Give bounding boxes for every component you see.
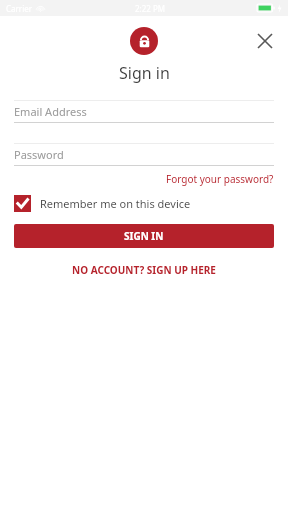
staticText: Carrier (6, 3, 33, 14)
button[interactable]: Email Address (14, 100, 274, 123)
staticText: Remember me on this device (40, 196, 191, 211)
button[interactable]: Password (14, 143, 274, 166)
button[interactable]: Secure sign in (130, 27, 158, 55)
staticText: Sign in (119, 62, 170, 84)
staticText: 2:22 PM (135, 3, 166, 14)
button[interactable]: Forgot your password? (166, 172, 274, 186)
button[interactable]: SIGN IN (14, 224, 274, 248)
staticText: Email Address (14, 104, 87, 119)
staticText: Password (14, 147, 64, 162)
button[interactable]: NO ACCOUNT? SIGN UP HERE (72, 263, 216, 277)
staticText: SIGN IN (124, 229, 164, 243)
button[interactable]: Remember me on this device (14, 195, 274, 212)
staticText: Forgot your password? (166, 172, 274, 186)
staticText: NO ACCOUNT? SIGN UP HERE (72, 263, 216, 277)
button[interactable]: Close (252, 28, 278, 54)
